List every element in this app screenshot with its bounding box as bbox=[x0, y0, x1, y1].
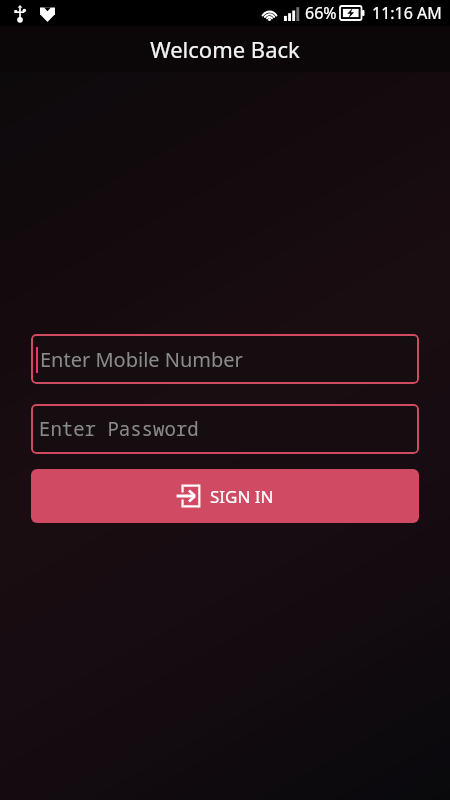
other: Cellular signal bbox=[284, 6, 301, 21]
staticText: Enter Mobile Number bbox=[40, 346, 243, 373]
staticText: Enter Password bbox=[39, 416, 199, 442]
other: Battery charging 66 percent bbox=[340, 6, 365, 20]
button[interactable]: Enter Password bbox=[31, 404, 419, 454]
button[interactable]: Sign in bbox=[31, 469, 419, 523]
staticText: SIGN IN bbox=[210, 485, 274, 508]
other: USB connected bbox=[14, 5, 26, 22]
other: Sign in bbox=[176, 483, 202, 509]
staticText: Welcome Back bbox=[150, 34, 300, 64]
other: Wi-Fi bbox=[260, 6, 279, 21]
other: Download bbox=[40, 6, 55, 22]
staticText: 66% bbox=[305, 2, 337, 24]
staticText: 11:16 AM bbox=[372, 2, 442, 24]
button[interactable]: Enter Mobile Number bbox=[31, 334, 419, 384]
